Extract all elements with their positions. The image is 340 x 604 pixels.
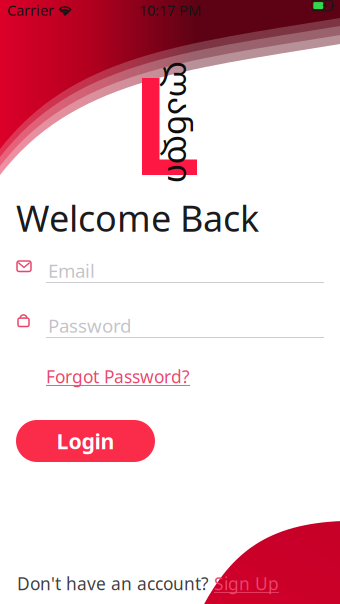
staticText: ლანდი — [120, 99, 242, 145]
button[interactable]: Sign Up — [214, 572, 279, 595]
staticText: Password — [48, 313, 131, 338]
button[interactable]: Login — [16, 420, 155, 462]
button[interactable]: Forgot Password? — [46, 365, 190, 388]
staticText: Email — [48, 258, 95, 283]
staticText: 10:17 PM — [139, 0, 201, 20]
staticText: Welcome Back — [16, 194, 259, 242]
staticText: Sign Up — [214, 572, 279, 595]
staticText: Login — [56, 427, 114, 455]
staticText: Forgot Password? — [46, 365, 190, 388]
staticText: Carrier — [7, 0, 54, 20]
staticText: Don't have an account? — [17, 572, 214, 595]
